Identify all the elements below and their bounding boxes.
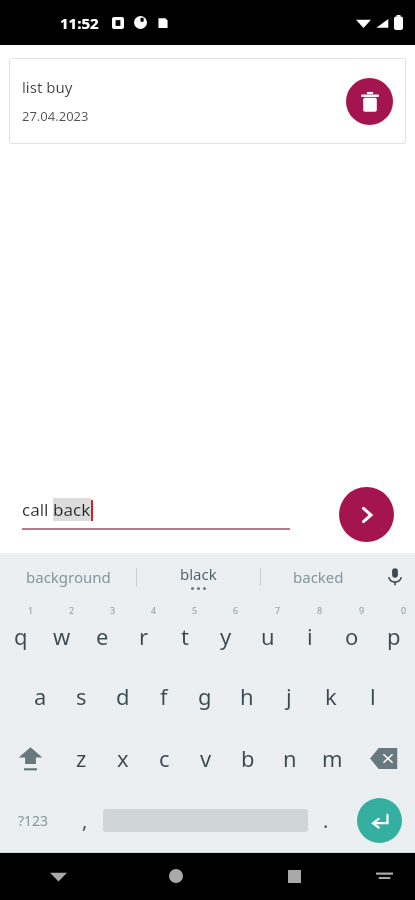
- button[interactable]: m: [311, 727, 353, 789]
- staticText: a: [34, 681, 47, 711]
- button[interactable]: 6: [205, 600, 247, 665]
- button[interactable]: Recents: [235, 852, 353, 900]
- staticText: k: [325, 681, 337, 711]
- staticText: 6: [233, 604, 239, 616]
- staticText: back: [53, 498, 91, 521]
- button[interactable]: Backspace: [353, 727, 415, 789]
- staticText: r: [139, 621, 149, 651]
- button[interactable]: s: [61, 665, 102, 727]
- staticText: 27.04.2023: [22, 107, 89, 125]
- staticText: u: [261, 621, 275, 651]
- button[interactable]: 0: [373, 600, 415, 665]
- staticText: ,: [82, 807, 88, 834]
- staticText: 7: [275, 604, 281, 616]
- staticText: background: [26, 567, 111, 587]
- button[interactable]: a: [20, 665, 61, 727]
- button[interactable]: k: [310, 665, 352, 727]
- staticText: call: [22, 498, 53, 521]
- staticText: l: [370, 681, 376, 711]
- staticText: d: [116, 681, 130, 711]
- staticText: g: [198, 681, 212, 711]
- button[interactable]: Shift: [0, 727, 61, 789]
- staticText: i: [307, 621, 313, 651]
- button[interactable]: 8: [289, 600, 331, 665]
- staticText: list buy: [22, 77, 73, 97]
- button[interactable]: list buy: [9, 58, 406, 144]
- staticText: 11:52: [60, 13, 99, 33]
- button[interactable]: f: [143, 665, 184, 727]
- staticText: backed: [293, 567, 344, 587]
- button[interactable]: 3: [82, 600, 123, 665]
- staticText: t: [181, 621, 189, 651]
- staticText: x: [117, 743, 129, 773]
- staticText: q: [14, 621, 28, 651]
- button[interactable]: 5: [164, 600, 205, 665]
- staticText: y: [220, 621, 232, 651]
- staticText: n: [283, 743, 297, 773]
- staticText: 3: [110, 604, 116, 616]
- button[interactable]: Home: [117, 852, 235, 900]
- staticText: c: [159, 743, 170, 773]
- staticText: j: [286, 681, 292, 711]
- button[interactable]: ,: [67, 789, 103, 852]
- button[interactable]: g: [184, 665, 226, 727]
- button[interactable]: background: [0, 553, 136, 600]
- staticText: w: [53, 621, 71, 651]
- staticText: 9: [359, 604, 365, 616]
- button[interactable]: .: [308, 789, 344, 852]
- staticText: 4: [151, 604, 157, 616]
- button[interactable]: n: [269, 727, 311, 789]
- button[interactable]: b: [227, 727, 269, 789]
- button[interactable]: black: [137, 553, 260, 600]
- button[interactable]: 2: [41, 600, 82, 665]
- button[interactable]: Switch keyboard: [353, 852, 415, 900]
- staticText: 1: [28, 604, 34, 616]
- button[interactable]: ?123: [0, 789, 67, 852]
- staticText: 2: [69, 604, 75, 616]
- staticText: z: [76, 743, 87, 773]
- staticText: s: [76, 681, 87, 711]
- button[interactable]: Back: [0, 852, 117, 900]
- button[interactable]: 4: [123, 600, 164, 665]
- button[interactable]: Space: [103, 789, 308, 852]
- button[interactable]: Send: [339, 487, 394, 542]
- button[interactable]: c: [143, 727, 185, 789]
- button[interactable]: x: [102, 727, 143, 789]
- staticText: o: [345, 621, 359, 651]
- button[interactable]: Voice input: [375, 553, 415, 600]
- staticText: .: [323, 807, 329, 834]
- button[interactable]: v: [185, 727, 227, 789]
- button[interactable]: 9: [331, 600, 373, 665]
- staticText: ?123: [18, 811, 49, 830]
- staticText: 0: [401, 604, 407, 616]
- button[interactable]: backed: [261, 553, 375, 600]
- button[interactable]: d: [102, 665, 143, 727]
- staticText: 5: [192, 604, 198, 616]
- button[interactable]: 7: [247, 600, 289, 665]
- staticText: f: [160, 681, 168, 711]
- staticText: b: [241, 743, 255, 773]
- button[interactable]: Enter: [344, 789, 415, 852]
- button[interactable]: Delete list: [346, 78, 393, 125]
- staticText: 8: [317, 604, 323, 616]
- button[interactable]: 1: [0, 600, 41, 665]
- staticText: m: [322, 743, 343, 773]
- button[interactable]: h: [226, 665, 268, 727]
- staticText: p: [387, 621, 401, 651]
- button[interactable]: z: [61, 727, 102, 789]
- staticText: e: [96, 621, 109, 651]
- button[interactable]: l: [352, 665, 394, 727]
- staticText: h: [240, 681, 254, 711]
- staticText: v: [200, 743, 212, 773]
- button[interactable]: j: [268, 665, 310, 727]
- staticText: black: [180, 564, 217, 584]
